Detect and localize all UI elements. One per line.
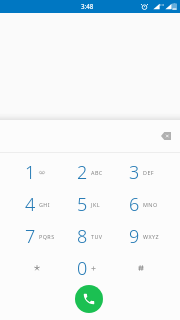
staticText: 5: [77, 192, 88, 217]
staticText: MNO: [143, 201, 158, 208]
button[interactable]: 8: [62, 220, 114, 252]
button[interactable]: 9: [114, 220, 166, 252]
button[interactable]: 6: [114, 188, 166, 220]
staticText: TUV: [91, 233, 103, 240]
staticText: 9: [129, 224, 140, 249]
staticText: DEF: [143, 169, 155, 176]
button[interactable]: 0: [62, 252, 114, 284]
button[interactable]: Call: [75, 285, 103, 313]
staticText: 2: [77, 160, 88, 185]
staticText: 1: [25, 160, 36, 185]
staticText: 6: [129, 192, 140, 217]
button[interactable]: 1: [10, 156, 62, 188]
staticText: PQRS: [39, 233, 55, 240]
staticText: GHI: [39, 201, 51, 208]
staticText: ABC: [91, 169, 103, 176]
staticText: WXYZ: [143, 233, 160, 240]
staticText: 0: [77, 256, 88, 281]
staticText: 7: [25, 224, 36, 249]
staticText: 3:48: [81, 2, 94, 10]
staticText: 8: [77, 224, 88, 249]
button[interactable]: [114, 252, 166, 284]
button[interactable]: Backspace: [156, 126, 176, 146]
staticText: 4: [25, 192, 36, 217]
button[interactable]: [10, 252, 62, 284]
staticText: 3: [129, 160, 140, 185]
button[interactable]: 7: [10, 220, 62, 252]
button[interactable]: 4: [10, 188, 62, 220]
button[interactable]: 3: [114, 156, 166, 188]
button[interactable]: 2: [62, 156, 114, 188]
button[interactable]: 5: [62, 188, 114, 220]
staticText: JKL: [91, 201, 100, 208]
